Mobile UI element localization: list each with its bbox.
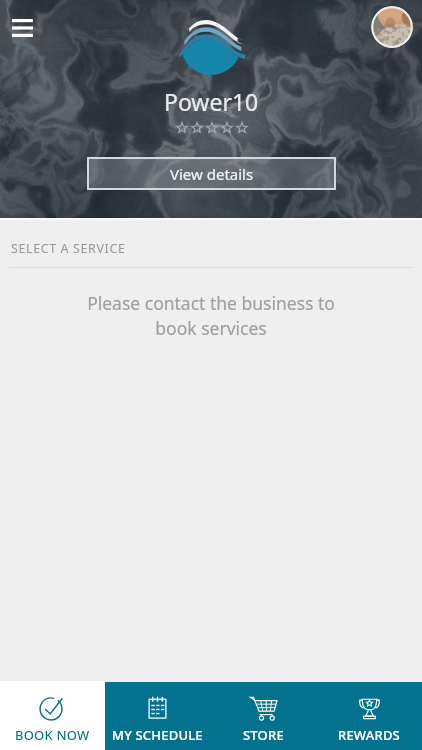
staticText: Please contact the business to book serv…	[87, 291, 335, 340]
staticText: Power10	[164, 86, 259, 117]
staticText: STORE	[243, 726, 284, 744]
staticText: View details	[170, 164, 254, 184]
button[interactable]: BOOK NOW	[0, 681, 105, 750]
button[interactable]: STORE	[210, 681, 316, 750]
staticText: MY SCHEDULE	[112, 726, 203, 744]
staticText: BOOK NOW	[15, 726, 90, 744]
button[interactable]: MY SCHEDULE	[105, 681, 210, 750]
staticText: REWARDS	[338, 726, 400, 744]
button[interactable]: REWARDS	[316, 681, 422, 750]
button[interactable]: View details	[87, 157, 336, 190]
button[interactable]: Profile	[371, 6, 413, 48]
button[interactable]: Menu	[6, 12, 38, 44]
staticText: SELECT A SERVICE	[11, 240, 126, 257]
